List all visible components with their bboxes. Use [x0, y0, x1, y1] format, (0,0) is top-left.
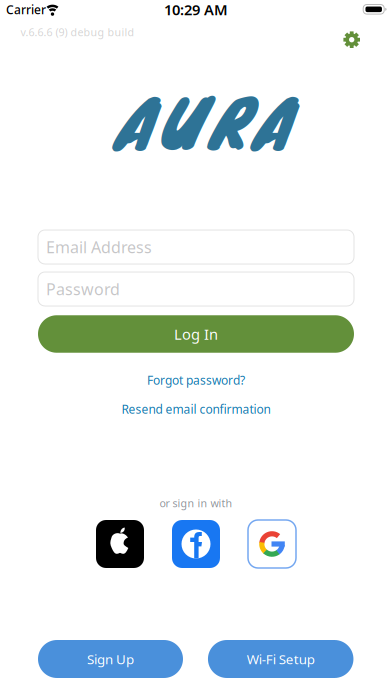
staticText: Carrier [6, 1, 46, 17]
staticText: Sign Up [87, 650, 134, 668]
button[interactable]: Resend email confirmation [121, 401, 270, 417]
button[interactable]: Forgot password? [147, 372, 245, 388]
button[interactable]: Sign Up [38, 640, 183, 678]
button[interactable]: Sign in with Google [248, 520, 296, 568]
staticText: Forgot password? [147, 372, 245, 388]
button[interactable]: Sign in with Facebook [172, 520, 220, 568]
button[interactable]: Log In [38, 315, 354, 353]
staticText: AURA [114, 71, 289, 172]
staticText: Log In [174, 324, 218, 344]
staticText: v.6.6.6 (9) debug build [20, 25, 134, 39]
staticText: 10:29 AM [164, 0, 228, 19]
button[interactable]: Settings [337, 25, 367, 55]
staticText: Wi-Fi Setup [247, 650, 315, 668]
staticText: Email Address [46, 236, 152, 258]
button[interactable]: Wi-Fi Setup [208, 640, 353, 678]
staticText: Password [46, 278, 120, 300]
staticText: Resend email confirmation [121, 401, 270, 417]
button[interactable]: Sign in with Apple [96, 520, 144, 568]
staticText: or sign in with [159, 496, 232, 510]
